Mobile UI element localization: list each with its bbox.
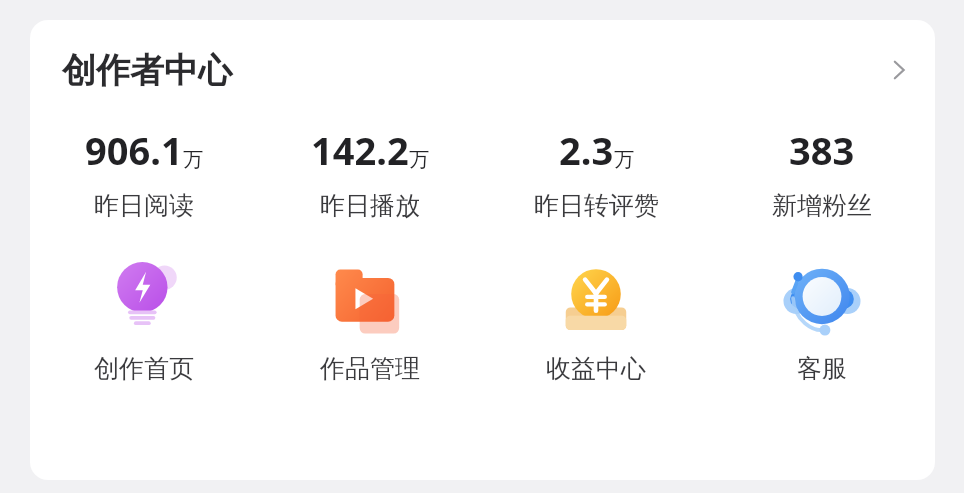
staticText: 142.2 xyxy=(311,124,409,176)
button[interactable]: 142.2 xyxy=(257,120,483,225)
other: 进入创作者中心 xyxy=(875,46,923,94)
button[interactable]: 383 xyxy=(709,120,935,225)
staticText: 万 xyxy=(614,147,634,172)
staticText: 昨日阅读 xyxy=(94,190,194,221)
staticText: 2.3 xyxy=(559,124,614,176)
staticText: 昨日转评赞 xyxy=(534,190,659,221)
staticText: 906.1 xyxy=(85,124,183,176)
staticText: 383 xyxy=(789,124,855,176)
staticText: 新增粉丝 xyxy=(772,190,872,221)
staticText: 收益中心 xyxy=(546,353,646,384)
button[interactable]: 2.3 xyxy=(483,120,709,225)
button[interactable]: 906.1 xyxy=(30,120,257,225)
button[interactable]: 收益中心 xyxy=(483,257,709,384)
button[interactable]: 创作首页 xyxy=(30,257,257,384)
staticText: 创作者中心 xyxy=(62,49,232,92)
staticText: 作品管理 xyxy=(320,353,420,384)
button[interactable]: 客服 xyxy=(709,257,935,384)
button[interactable]: 创作者中心 xyxy=(30,20,935,120)
staticText: 昨日播放 xyxy=(320,190,420,221)
staticText: 万 xyxy=(409,147,429,172)
button[interactable]: 作品管理 xyxy=(257,257,483,384)
staticText: 创作首页 xyxy=(94,353,194,384)
staticText: 万 xyxy=(183,147,203,172)
staticText: 客服 xyxy=(797,353,847,384)
